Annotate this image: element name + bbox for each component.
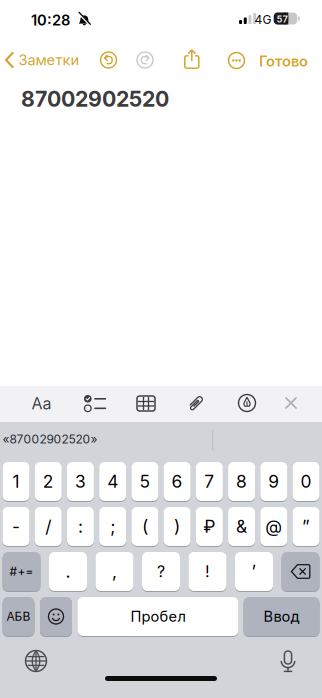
button[interactable]: 2 bbox=[35, 461, 62, 501]
staticText: 6 bbox=[172, 471, 183, 492]
button[interactable]: More bbox=[227, 51, 244, 68]
staticText: Ввод bbox=[263, 608, 299, 625]
button[interactable]: Back bbox=[5, 49, 79, 71]
button[interactable]: Dictation bbox=[280, 650, 296, 673]
button[interactable]: . bbox=[49, 551, 87, 591]
button[interactable]: ? bbox=[142, 551, 180, 591]
staticText: ₽ bbox=[203, 516, 215, 537]
button[interactable]: ₽ bbox=[196, 506, 223, 546]
button[interactable]: ! bbox=[188, 551, 226, 591]
button[interactable]: 6 bbox=[164, 461, 191, 501]
staticText: ? bbox=[157, 562, 165, 581]
staticText: , bbox=[112, 561, 117, 582]
button[interactable]: 4 bbox=[99, 461, 126, 501]
button[interactable]: Share bbox=[184, 49, 200, 69]
button[interactable]: Checklist bbox=[84, 395, 106, 412]
button[interactable]: 1 bbox=[2, 461, 29, 501]
button[interactable]: Undo bbox=[100, 51, 117, 68]
button[interactable]: Redo bbox=[136, 51, 153, 68]
staticText: @ bbox=[265, 516, 282, 537]
button[interactable]: 3 bbox=[67, 461, 94, 501]
staticText: 3 bbox=[75, 471, 86, 492]
button[interactable]: ” bbox=[292, 506, 319, 546]
button[interactable]: АБВ bbox=[2, 596, 34, 636]
button[interactable]: Next keyboard bbox=[25, 650, 47, 672]
staticText: ” bbox=[302, 516, 310, 537]
button[interactable]: 9 bbox=[260, 461, 287, 501]
staticText: 1 bbox=[12, 471, 19, 492]
staticText: 4G bbox=[254, 12, 271, 27]
button[interactable]: @ bbox=[260, 506, 287, 546]
staticText: ! bbox=[205, 562, 210, 581]
staticText: . bbox=[65, 561, 70, 582]
staticText: 8 bbox=[236, 471, 247, 492]
button[interactable]: Ввод bbox=[243, 596, 319, 636]
staticText: 2 bbox=[43, 471, 54, 492]
staticText: - bbox=[12, 516, 20, 537]
staticText: ; bbox=[110, 516, 115, 537]
staticText: Готово bbox=[259, 52, 308, 70]
button[interactable]: , bbox=[95, 551, 133, 591]
button[interactable]: Format bbox=[31, 394, 51, 413]
button[interactable]: Markup bbox=[238, 394, 256, 412]
button[interactable]: 7 bbox=[196, 461, 223, 501]
button[interactable]: ( bbox=[131, 506, 158, 546]
button[interactable]: & bbox=[228, 506, 255, 546]
button[interactable]: 8 bbox=[228, 461, 255, 501]
staticText: 9 bbox=[268, 471, 279, 492]
staticText: 0 bbox=[300, 471, 311, 492]
staticText: & bbox=[236, 516, 247, 537]
staticText: ’ bbox=[251, 561, 256, 582]
button[interactable]: ) bbox=[164, 506, 191, 546]
button[interactable]: #+= bbox=[2, 551, 40, 591]
staticText: Заметки bbox=[18, 51, 79, 69]
button[interactable]: 5 bbox=[131, 461, 158, 501]
staticText: 57 bbox=[277, 14, 288, 25]
button[interactable]: Готово bbox=[259, 52, 308, 70]
button[interactable]: ’ bbox=[235, 551, 273, 591]
button[interactable]: 0 bbox=[292, 461, 319, 501]
staticText: ( bbox=[142, 516, 148, 537]
staticText: #+= bbox=[9, 564, 33, 579]
staticText: АБВ bbox=[6, 609, 30, 624]
button[interactable]: Delete bbox=[281, 551, 319, 591]
staticText: / bbox=[45, 516, 51, 537]
button[interactable]: Attach bbox=[187, 394, 205, 412]
staticText: Aa bbox=[31, 394, 51, 413]
button[interactable]: / bbox=[35, 506, 62, 546]
button[interactable]: Emoji bbox=[40, 596, 72, 636]
staticText: 4 bbox=[107, 471, 118, 492]
staticText: 5 bbox=[139, 471, 150, 492]
staticText: 7 bbox=[204, 471, 214, 492]
button[interactable]: - bbox=[2, 506, 29, 546]
button[interactable]: Close bbox=[285, 397, 297, 409]
button[interactable]: : bbox=[67, 506, 94, 546]
staticText: 10:28 bbox=[31, 11, 70, 29]
staticText: 87002902520 bbox=[21, 86, 169, 112]
button[interactable]: Пробел bbox=[77, 596, 238, 636]
staticText: ) bbox=[174, 516, 180, 537]
button[interactable]: Table bbox=[137, 396, 155, 411]
button[interactable]: «87002902520» bbox=[2, 432, 97, 446]
staticText: Пробел bbox=[130, 608, 185, 625]
staticText: : bbox=[78, 516, 83, 537]
button[interactable]: ; bbox=[99, 506, 126, 546]
staticText: «87002902520» bbox=[2, 432, 97, 446]
